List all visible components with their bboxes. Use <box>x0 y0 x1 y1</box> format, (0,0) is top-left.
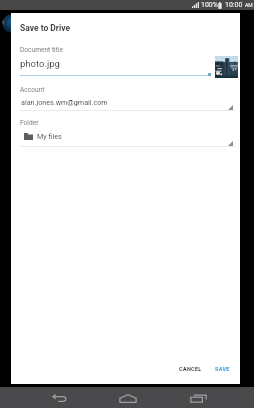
staticText: AM <box>245 2 253 8</box>
staticText: My files <box>37 132 62 140</box>
button[interactable]: Recent apps <box>181 388 215 408</box>
button[interactable]: Back <box>42 388 76 408</box>
staticText: 10:00 <box>225 1 243 9</box>
button[interactable]: Home <box>111 388 145 408</box>
staticText: Save to Drive <box>20 23 71 33</box>
button[interactable]: SAVE <box>209 360 236 378</box>
button[interactable]: CANCEL <box>173 360 207 378</box>
staticText: Folder <box>20 119 39 127</box>
staticText: photo.jpg <box>20 58 60 69</box>
staticText: Account <box>20 86 45 94</box>
button[interactable]: My files <box>20 130 235 150</box>
staticText: 100% <box>201 1 218 9</box>
staticText: Document title <box>20 46 63 54</box>
staticText: SAVE <box>215 366 230 372</box>
button[interactable]: alan.jones.wm@gmail.com <box>20 97 235 114</box>
staticText: alan.jones.wm@gmail.com <box>21 98 108 106</box>
staticText: CANCEL <box>179 366 202 372</box>
